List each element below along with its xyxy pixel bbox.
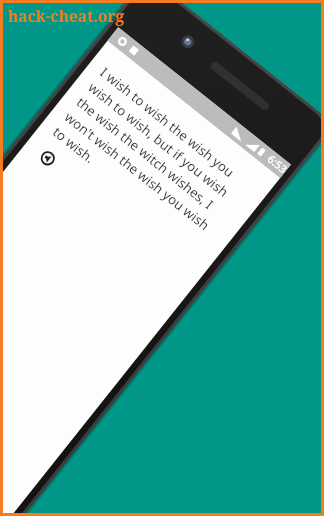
button[interactable]: Wish quote app screenshot bbox=[0, 0, 324, 516]
